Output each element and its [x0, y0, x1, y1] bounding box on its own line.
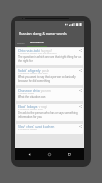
staticText: What the situation can — [18, 95, 46, 99]
staticText: WORDS — [17, 42, 25, 45]
staticText: Slov' ches' uzat kuchen — [18, 124, 55, 129]
button[interactable]: WORDS — [15, 39, 27, 47]
staticText: the right for — [18, 59, 33, 63]
button[interactable]: Slov' ches' uzat kuchen — [16, 124, 83, 134]
staticText: a couple of replies — [18, 128, 37, 131]
staticText: because he did something — [18, 79, 51, 83]
button[interactable]: Chto vsio-taki — [16, 48, 83, 65]
staticText: Sobit' afigenly — [18, 68, 41, 73]
button[interactable]: Russian slang & swear words — [15, 27, 84, 39]
staticText: I'm ask to the person who has or says so… — [18, 111, 83, 115]
staticText: The question is which one are that right… — [18, 55, 83, 59]
staticText: posle — [41, 69, 50, 73]
button[interactable]: Share — [78, 124, 83, 129]
staticText: a couple of replies form — [18, 108, 43, 111]
staticText: a couple of replies nice form — [18, 72, 48, 75]
staticText: information for you — [18, 115, 42, 119]
button[interactable]: Home — [44, 149, 55, 160]
button[interactable]: Share — [78, 88, 83, 93]
button[interactable]: Share — [78, 48, 83, 53]
button[interactable]: Back — [24, 149, 35, 160]
staticText: Russian slang & swear words — [19, 31, 67, 36]
button[interactable]: DISCUSSIONS — [27, 39, 47, 47]
button[interactable]: Share — [78, 68, 83, 73]
staticText: Ebat' lobaya — [18, 104, 38, 109]
button[interactable]: Sobit' afigenly — [16, 68, 83, 85]
staticText: Chto vsio-taki — [18, 48, 40, 53]
staticText: What you want to say that a person so ba… — [18, 75, 83, 79]
staticText: a couple of replies only the rare form — [18, 52, 57, 55]
staticText: DISCUSSIONS — [30, 41, 44, 44]
button[interactable]: Ebat' lobaya — [16, 104, 83, 121]
staticText: ya nem — [40, 89, 51, 93]
staticText: a couple usage — [18, 92, 35, 95]
staticText: huynya? — [40, 49, 52, 53]
button[interactable]: Chasnoe chto — [16, 88, 83, 101]
staticText: Chasnoe chto — [18, 88, 40, 93]
button[interactable]: Recents — [64, 149, 75, 160]
button[interactable]: Share — [78, 104, 83, 109]
staticText: v nogi — [38, 105, 48, 109]
